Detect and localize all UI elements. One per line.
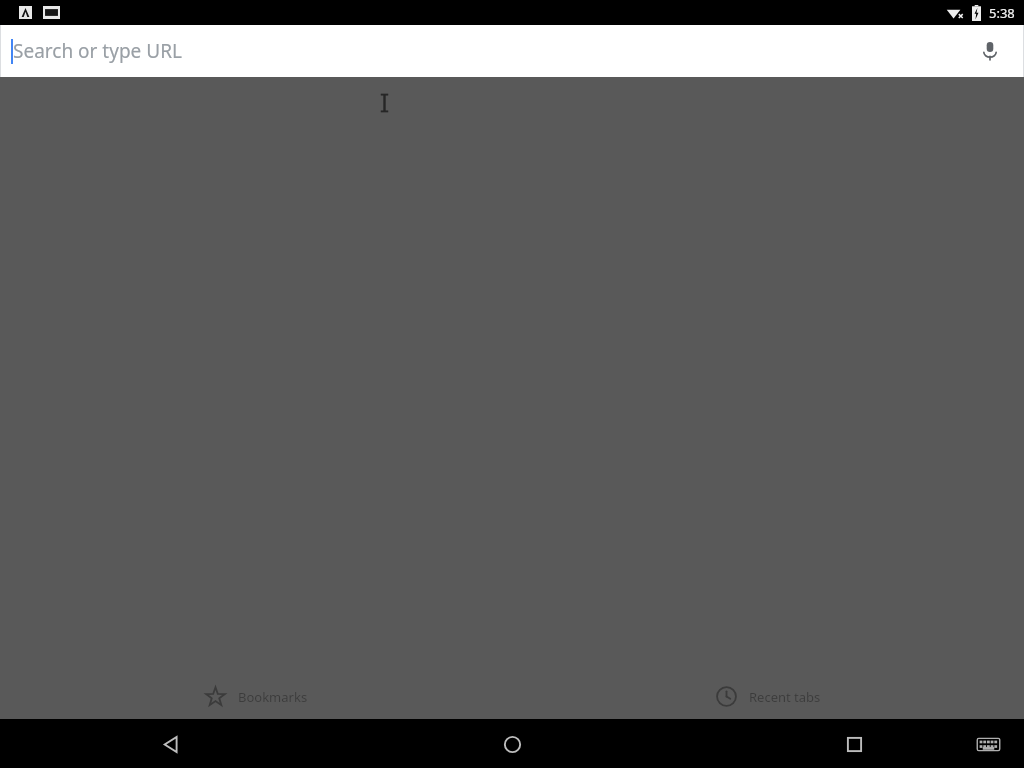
staticText: Bookmarks: [238, 688, 308, 706]
button[interactable]: Recent tabs: [710, 681, 827, 712]
button[interactable]: Voice search: [968, 29, 1012, 73]
button[interactable]: Bookmarks: [199, 681, 314, 712]
button[interactable]: Home: [488, 720, 536, 768]
staticText: 5:38: [989, 4, 1015, 22]
staticText: Search or type URL: [13, 38, 182, 64]
button[interactable]: Recents: [830, 720, 878, 768]
button[interactable]: Back: [147, 720, 195, 768]
button[interactable]: Search or type URL: [0, 25, 1024, 77]
staticText: Recent tabs: [749, 688, 821, 706]
button[interactable]: Hide keyboard: [971, 727, 1005, 761]
